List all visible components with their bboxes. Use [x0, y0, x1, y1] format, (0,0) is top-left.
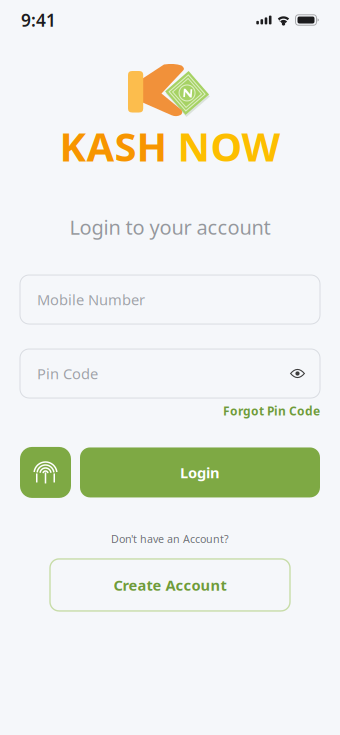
staticText: Pin Code: [37, 364, 98, 383]
staticText: KASH: [59, 119, 167, 172]
staticText: Login: [180, 463, 220, 482]
button[interactable]: Create Account: [50, 559, 290, 611]
staticText: Create Account: [113, 575, 226, 595]
staticText: Mobile Number: [37, 290, 145, 309]
button[interactable]: Fingerprint login: [20, 447, 71, 498]
staticText: 9:41: [21, 8, 56, 31]
button[interactable]: Forgot Pin Code: [223, 403, 320, 419]
button[interactable]: Login: [80, 447, 320, 497]
staticText: Login to your account: [69, 214, 270, 240]
staticText: Don't have an Account?: [111, 532, 229, 546]
staticText: Forgot Pin Code: [223, 403, 320, 419]
staticText: NOW: [167, 119, 280, 172]
